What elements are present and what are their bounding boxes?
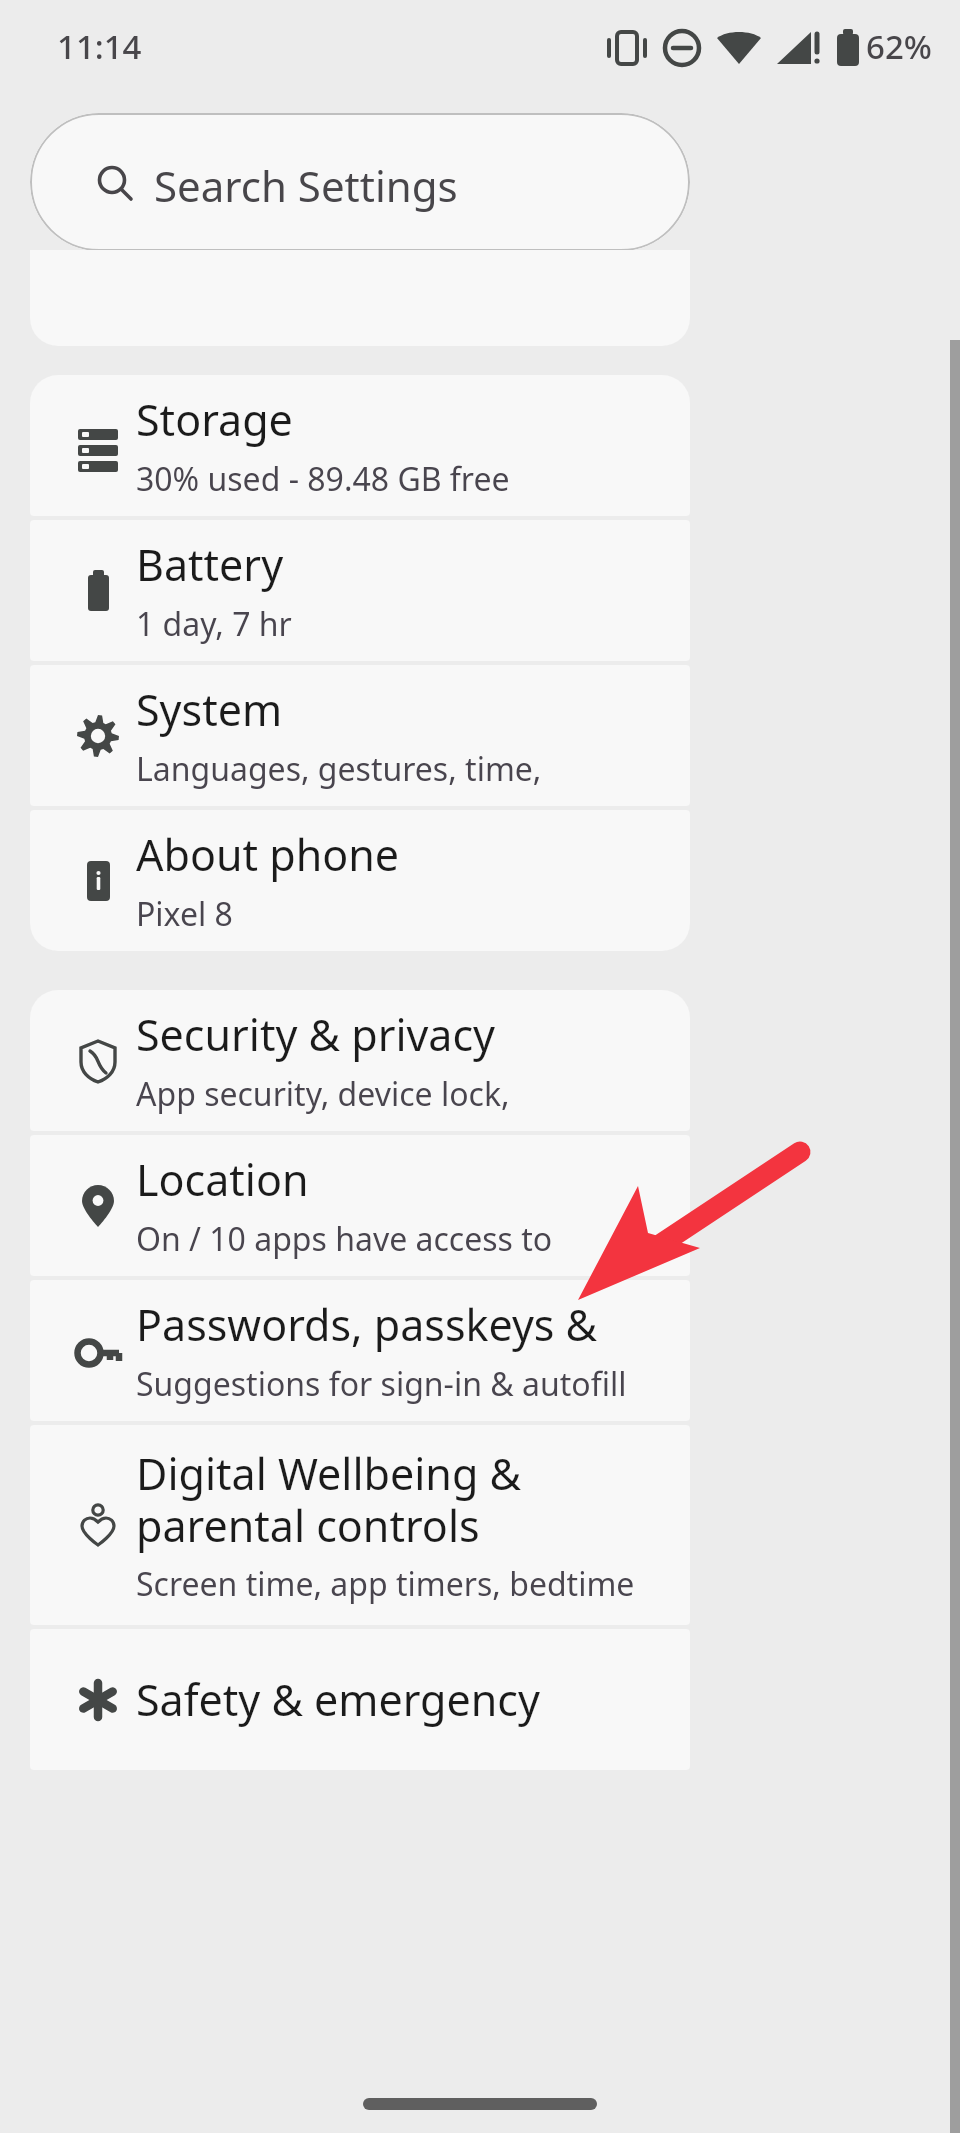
- staticText: System: [136, 680, 283, 739]
- staticText: 62%: [866, 24, 932, 69]
- staticText: Battery: [136, 535, 284, 594]
- staticText: Safety & emergency: [136, 1670, 540, 1729]
- staticText: Search Settings: [154, 157, 458, 214]
- other: Passwords and accounts: [74, 1327, 122, 1375]
- button[interactable]: About phone: [30, 810, 690, 951]
- other: Storage: [74, 422, 122, 470]
- button[interactable]: Storage: [30, 375, 690, 516]
- staticText: 1 day, 7 hr: [136, 602, 292, 646]
- staticText: 11:14: [57, 24, 142, 69]
- button[interactable]: Search Settings: [30, 113, 690, 251]
- staticText: Screen time, app timers, bedtime schedul…: [136, 1562, 646, 1606]
- staticText: Storage: [136, 390, 293, 449]
- button[interactable]: Digital Wellbeing: [30, 1425, 690, 1625]
- staticText: Security & privacy: [136, 1005, 496, 1064]
- staticText: Pixel 8: [136, 892, 233, 936]
- button[interactable]: Location: [30, 1135, 690, 1276]
- staticText: Location: [136, 1150, 309, 1209]
- staticText: On / 10 apps have access to location: [136, 1217, 646, 1261]
- staticText: Passwords, passkeys & accounts: [136, 1295, 646, 1354]
- button[interactable]: Security and privacy: [30, 990, 690, 1131]
- button[interactable]: Battery: [30, 520, 690, 661]
- staticText: 30% used - 89.48 GB free: [136, 457, 510, 501]
- staticText: About phone: [136, 825, 400, 884]
- other: About phone: [74, 857, 122, 905]
- button[interactable]: Passwords and accounts: [30, 1280, 690, 1421]
- other: Location: [74, 1182, 122, 1230]
- staticText: Languages, gestures, time, backup: [136, 747, 646, 791]
- other: System: [74, 712, 122, 760]
- other: Digital Wellbeing: [74, 1501, 122, 1549]
- other: Security and privacy: [74, 1037, 122, 1085]
- staticText: App security, device lock, permissions: [136, 1072, 646, 1116]
- staticText: Suggestions for sign-in & autofill: [136, 1362, 627, 1406]
- other: Safety and emergency: [74, 1676, 122, 1724]
- staticText: Digital Wellbeing & parental controls: [136, 1444, 646, 1554]
- button[interactable]: System: [30, 665, 690, 806]
- other: Battery: [74, 567, 122, 615]
- button[interactable]: Safety and emergency: [30, 1629, 690, 1770]
